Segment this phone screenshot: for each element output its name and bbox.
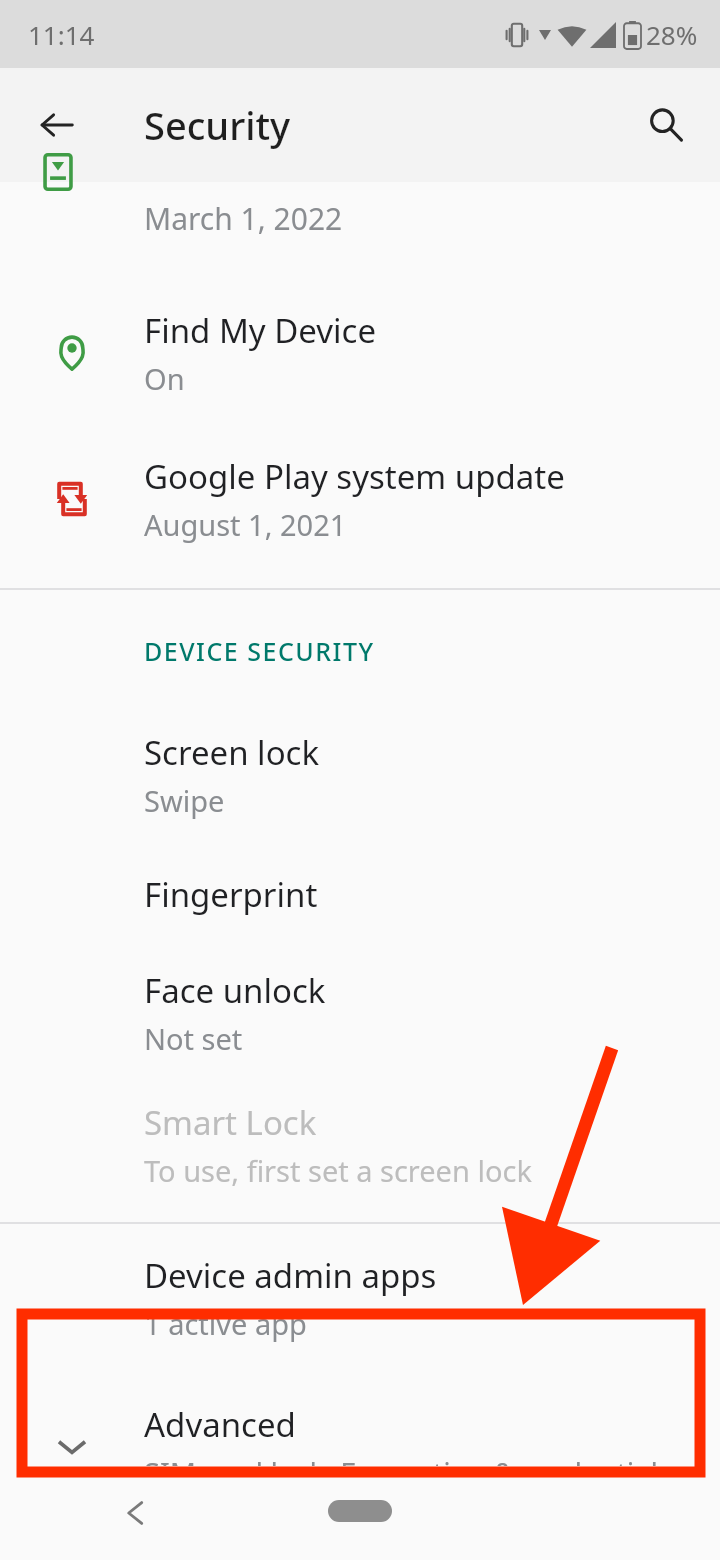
- staticText: Not set: [144, 1019, 243, 1058]
- staticText: Swipe: [144, 781, 225, 820]
- staticText: 11:14: [28, 17, 95, 52]
- button[interactable]: Fingerprint: [0, 840, 720, 948]
- staticText: August 1, 2021: [144, 505, 347, 544]
- staticText: 1 active app: [144, 1304, 307, 1343]
- button[interactable]: Back: [22, 90, 92, 160]
- staticText: March 1, 2022: [144, 198, 343, 239]
- staticText: Security: [144, 99, 291, 151]
- staticText: Screen lock: [144, 730, 320, 775]
- staticText: To use, first set a screen lock: [144, 1151, 532, 1190]
- staticText: Smart Lock: [144, 1100, 317, 1145]
- button[interactable]: Back: [106, 1483, 166, 1543]
- staticText: Device admin apps: [144, 1253, 437, 1298]
- button[interactable]: Advanced: [0, 1372, 720, 1522]
- button[interactable]: Home: [328, 1500, 392, 1522]
- staticText: SIM card lock, Encryption & credentials,…: [144, 1453, 720, 1492]
- staticText: Face unlock: [144, 968, 326, 1013]
- button[interactable]: Find My Device: [0, 280, 720, 426]
- button[interactable]: Google Play system update: [0, 426, 720, 572]
- button[interactable]: Screen lock: [0, 710, 720, 840]
- staticText: Find My Device: [144, 308, 377, 353]
- button[interactable]: Face unlock: [0, 948, 720, 1078]
- staticText: Google Play system update: [144, 454, 565, 499]
- staticText: On: [144, 359, 185, 398]
- staticText: Fingerprint: [144, 872, 318, 917]
- staticText: 28%: [646, 17, 698, 52]
- button[interactable]: Smart Lock: [0, 1078, 720, 1212]
- staticText: Advanced: [144, 1402, 296, 1447]
- button[interactable]: Device admin apps: [0, 1224, 720, 1372]
- staticText: DEVICE SECURITY: [144, 634, 375, 668]
- button[interactable]: Search: [632, 91, 700, 159]
